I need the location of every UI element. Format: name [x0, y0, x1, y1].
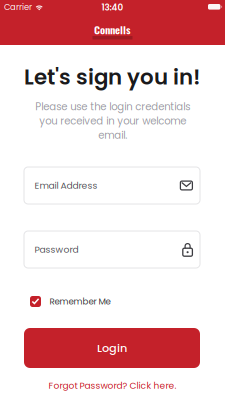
staticText: Carrier [4, 1, 32, 13]
staticText: Login [97, 340, 127, 356]
staticText: Let's sign you in! [24, 62, 201, 92]
staticText: Forgot Password? Click here. [48, 379, 176, 392]
staticText: Remember Me [49, 295, 110, 307]
staticText: Connells [94, 21, 131, 37]
staticText: Password [34, 243, 78, 256]
button[interactable]: Remember Me [30, 295, 206, 308]
button[interactable]: Password [24, 231, 200, 268]
button[interactable]: Email Address [24, 167, 200, 204]
staticText: Please use the login credentials you rec… [35, 100, 190, 142]
button[interactable]: Forgot Password? Click here. [0, 380, 225, 391]
button[interactable]: Login [24, 328, 200, 368]
staticText: 13:40 [101, 1, 123, 13]
staticText: Email Address [34, 179, 97, 192]
